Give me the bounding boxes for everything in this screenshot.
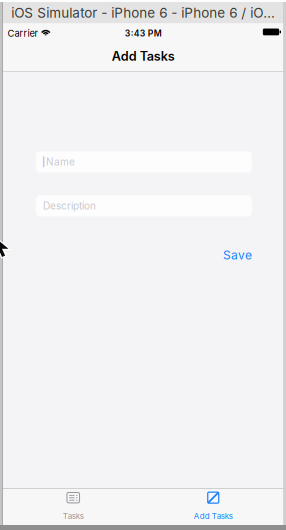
staticText: Description <box>43 200 96 212</box>
button[interactable]: Tasks <box>3 489 143 525</box>
staticText: Carrier <box>7 28 38 39</box>
staticText: Add Tasks <box>194 511 233 521</box>
staticText: 3:43 PM <box>125 28 162 38</box>
staticText: Tasks <box>63 511 84 521</box>
button[interactable]: Save <box>223 248 252 262</box>
staticText: Add Tasks <box>112 49 175 64</box>
staticText: iOS Simulator - iPhone 6 - iPhone 6 / iO… <box>11 5 275 21</box>
staticText: Name <box>46 156 75 168</box>
button[interactable]: Add Tasks <box>143 489 283 525</box>
staticText: Save <box>223 248 252 262</box>
